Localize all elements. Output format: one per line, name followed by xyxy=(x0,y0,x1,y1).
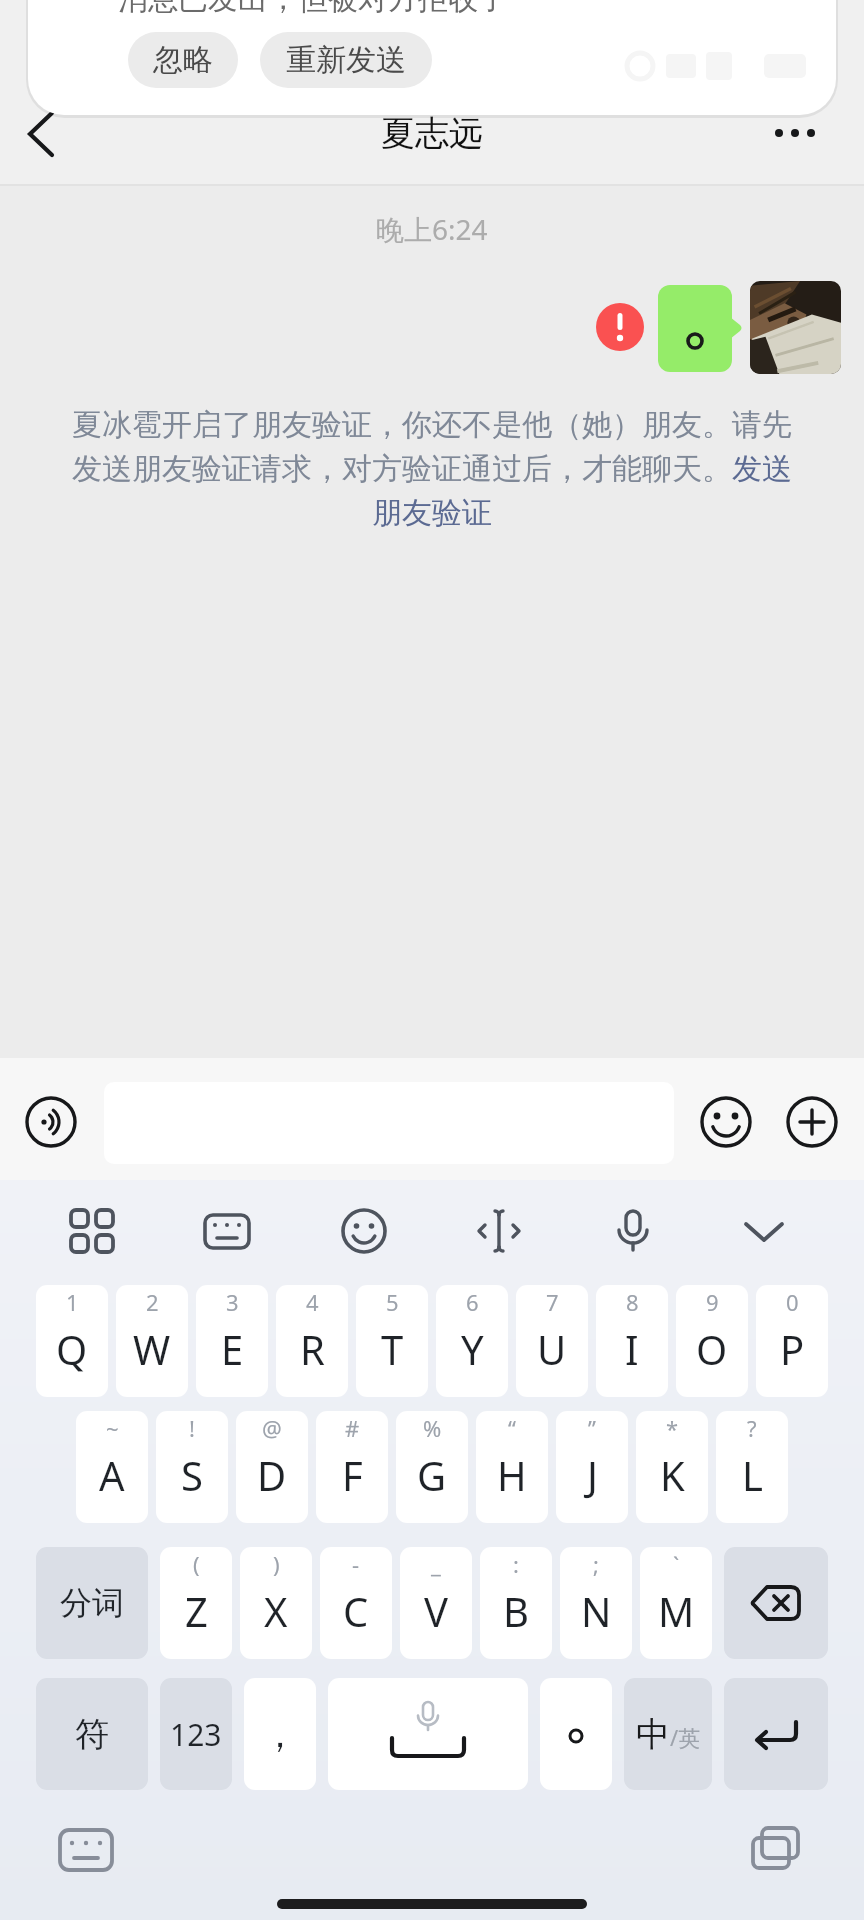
staticText: 重新发送 xyxy=(286,41,406,79)
staticText: 0 xyxy=(786,1287,799,1317)
staticText: ? xyxy=(747,1413,757,1443)
button[interactable]: ~ xyxy=(76,1411,148,1523)
staticText: 晚上6:24 xyxy=(376,210,488,248)
button[interactable] xyxy=(724,1678,828,1790)
button[interactable]: 忽略 xyxy=(128,32,238,88)
staticText: 2 xyxy=(146,1287,159,1317)
button[interactable]: 0 xyxy=(756,1285,828,1397)
button[interactable] xyxy=(68,1207,116,1255)
staticText: F xyxy=(342,1448,363,1502)
staticText: K xyxy=(660,1448,685,1502)
button[interactable]: ; xyxy=(560,1547,632,1659)
staticText: W xyxy=(133,1322,171,1376)
button[interactable]: 7 xyxy=(516,1285,588,1397)
button[interactable]: 6 xyxy=(436,1285,508,1397)
staticText: M xyxy=(658,1584,695,1638)
button[interactable]: _ xyxy=(400,1547,472,1659)
staticText: E xyxy=(221,1322,244,1376)
staticText: L xyxy=(742,1448,763,1502)
staticText: I xyxy=(625,1322,639,1376)
staticText: P xyxy=(780,1322,805,1376)
staticText: % xyxy=(423,1413,442,1443)
button[interactable] xyxy=(58,1826,114,1874)
button[interactable]: ` xyxy=(640,1547,712,1659)
staticText: C xyxy=(343,1584,369,1638)
staticText: - xyxy=(352,1549,360,1579)
button[interactable] xyxy=(750,281,841,374)
staticText: J xyxy=(587,1448,598,1502)
staticText: 123 xyxy=(170,1714,222,1755)
staticText: “ xyxy=(508,1413,516,1443)
button[interactable]: 4 xyxy=(276,1285,348,1397)
staticText: # xyxy=(345,1413,360,1443)
staticText: ( xyxy=(193,1549,200,1579)
button[interactable]: * xyxy=(636,1411,708,1523)
button[interactable]: 123 xyxy=(160,1678,232,1790)
button[interactable]: 1 xyxy=(36,1285,108,1397)
button[interactable] xyxy=(740,1207,788,1255)
staticText: D xyxy=(257,1448,287,1502)
button[interactable]: 3 xyxy=(196,1285,268,1397)
button[interactable]: 8 xyxy=(596,1285,668,1397)
staticText: X xyxy=(264,1584,288,1638)
staticText: 夏冰雹开启了朋友验证，你还不是他（她）朋友。请先 发送朋友验证请求，对方验证通过… xyxy=(72,406,792,532)
button[interactable]: 9 xyxy=(676,1285,748,1397)
staticText: 符 xyxy=(75,1713,109,1756)
button[interactable] xyxy=(786,1096,838,1148)
button[interactable]: ” xyxy=(556,1411,628,1523)
staticText: V xyxy=(424,1584,448,1638)
button[interactable] xyxy=(770,118,822,148)
button[interactable]: # xyxy=(316,1411,388,1523)
button[interactable]: 符 xyxy=(36,1678,148,1790)
staticText: G xyxy=(417,1448,447,1502)
staticText: 9 xyxy=(706,1287,719,1317)
button[interactable]: ， xyxy=(244,1678,316,1790)
staticText: A xyxy=(99,1448,125,1502)
button[interactable] xyxy=(748,1826,804,1874)
button[interactable] xyxy=(658,285,732,372)
button[interactable] xyxy=(203,1207,251,1255)
staticText: 7 xyxy=(546,1287,559,1317)
staticText: @ xyxy=(262,1413,282,1443)
button[interactable]: : xyxy=(480,1547,552,1659)
button[interactable] xyxy=(340,1207,388,1255)
button[interactable] xyxy=(540,1678,612,1790)
staticText: N xyxy=(581,1584,612,1638)
button[interactable] xyxy=(700,1096,752,1148)
staticText: 1 xyxy=(66,1287,79,1317)
staticText: ” xyxy=(588,1413,596,1443)
button[interactable] xyxy=(328,1678,528,1790)
button[interactable]: “ xyxy=(476,1411,548,1523)
button[interactable] xyxy=(24,110,58,158)
button[interactable]: ( xyxy=(160,1547,232,1659)
staticText: 夏志远 xyxy=(381,112,483,155)
staticText: B xyxy=(503,1584,529,1638)
button[interactable]: 中/英 xyxy=(624,1678,712,1790)
staticText: O xyxy=(696,1322,728,1376)
staticText: ` xyxy=(673,1549,680,1579)
staticText: U xyxy=(537,1322,567,1376)
staticText: 消息已发出，但被对方拒收了 xyxy=(118,0,508,18)
button[interactable] xyxy=(475,1207,523,1255)
button[interactable]: - xyxy=(320,1547,392,1659)
button[interactable] xyxy=(724,1547,828,1659)
button[interactable]: % xyxy=(396,1411,468,1523)
button[interactable]: ) xyxy=(240,1547,312,1659)
staticText: 3 xyxy=(226,1287,239,1317)
button[interactable]: @ xyxy=(236,1411,308,1523)
button[interactable] xyxy=(25,1096,77,1148)
staticText: 忽略 xyxy=(153,41,213,79)
button[interactable]: 2 xyxy=(116,1285,188,1397)
button[interactable]: 重新发送 xyxy=(260,32,432,88)
button[interactable]: ? xyxy=(716,1411,788,1523)
button[interactable] xyxy=(609,1207,657,1255)
staticText: R xyxy=(300,1322,325,1376)
button[interactable]: 分词 xyxy=(36,1547,148,1659)
button[interactable]: 5 xyxy=(356,1285,428,1397)
staticText: _ xyxy=(431,1549,441,1579)
staticText: 6 xyxy=(466,1287,479,1317)
staticText: 分词 xyxy=(60,1583,124,1623)
staticText: 中/英 xyxy=(636,1713,701,1756)
button[interactable]: ! xyxy=(156,1411,228,1523)
